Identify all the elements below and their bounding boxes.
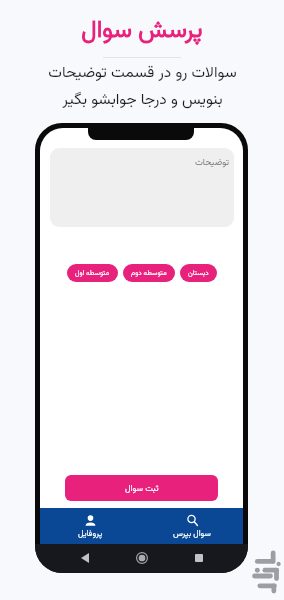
staticText: پرسش سوال <box>81 12 203 50</box>
button[interactable]: متوسطه دوم <box>123 264 175 282</box>
staticText: دبستان <box>188 268 209 279</box>
staticText: پروفایل <box>78 527 103 540</box>
staticText: متوسطه دوم <box>131 268 167 279</box>
button[interactable]: Home <box>133 549 151 567</box>
button[interactable]: Back <box>76 549 94 567</box>
button[interactable]: Recent apps <box>190 549 208 567</box>
button[interactable]: متوسطه اول <box>67 264 118 282</box>
button[interactable]: پروفایل <box>40 508 141 544</box>
staticText: ثبت سوال <box>125 482 159 495</box>
staticText: سوال بپرس <box>173 527 211 540</box>
button[interactable]: ثبت سوال <box>65 475 218 501</box>
staticText: توضیحات <box>195 156 229 170</box>
button[interactable]: دبستان <box>180 264 217 282</box>
staticText: متوسطه اول <box>75 268 110 279</box>
button[interactable]: توضیحات <box>50 148 234 227</box>
button[interactable]: سوال بپرس <box>141 508 243 544</box>
staticText: سوالات رو در قسمت توضیحات بنویس و درجا ج… <box>48 61 237 112</box>
